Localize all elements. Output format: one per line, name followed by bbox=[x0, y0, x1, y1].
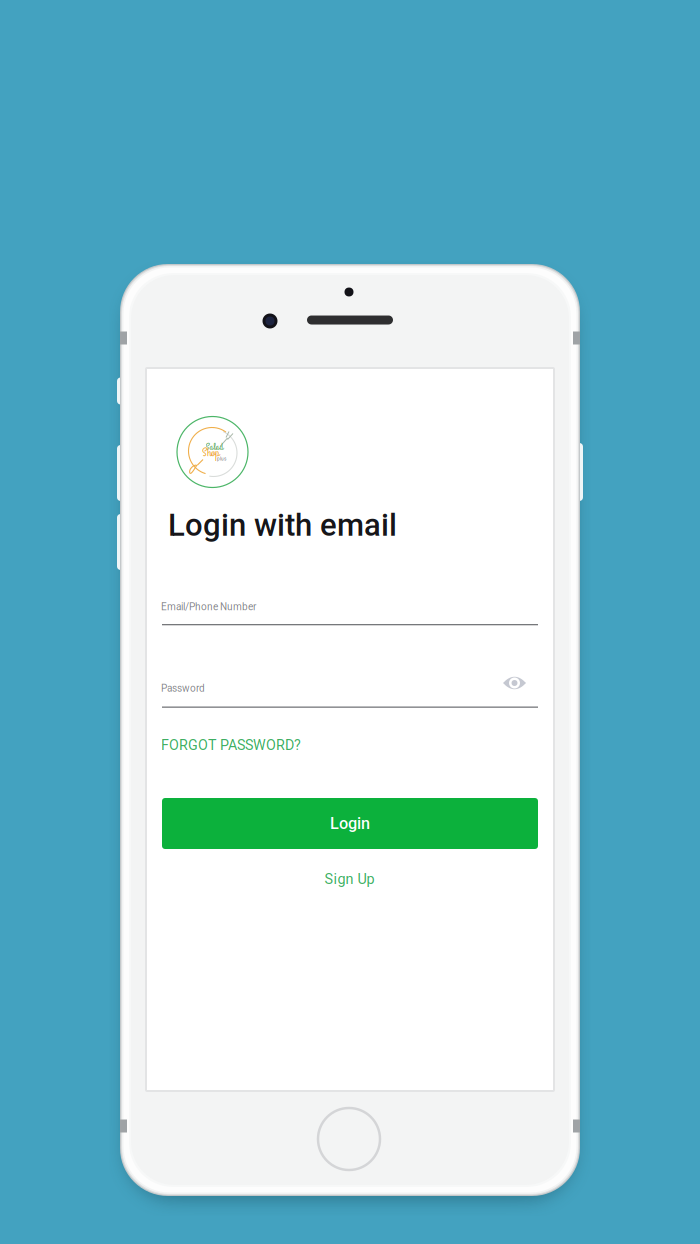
staticText: plus bbox=[217, 456, 226, 462]
staticText: Shop bbox=[202, 445, 219, 461]
staticText: Login with email bbox=[168, 507, 397, 543]
button[interactable]: Login bbox=[162, 798, 538, 849]
button[interactable]: Sign Up bbox=[161, 866, 537, 892]
staticText: Login bbox=[330, 814, 370, 833]
staticText: Email/Phone Number bbox=[161, 601, 256, 613]
button[interactable]: Show password bbox=[492, 665, 536, 701]
staticText: FORGOT PASSWORD? bbox=[161, 737, 301, 753]
staticText: Salad bbox=[205, 440, 223, 454]
staticText: Sign Up bbox=[324, 871, 374, 887]
button[interactable]: FORGOT PASSWORD? bbox=[161, 734, 311, 756]
staticText: Password bbox=[161, 682, 205, 694]
